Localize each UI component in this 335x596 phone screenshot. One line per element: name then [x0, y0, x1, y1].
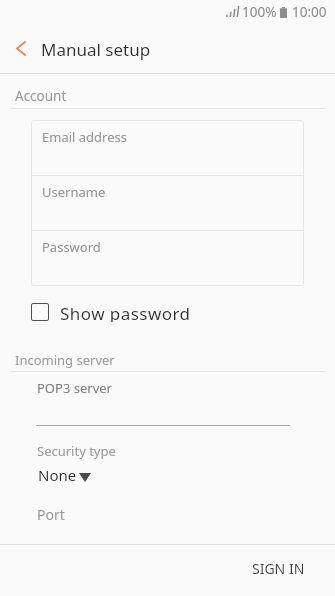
staticText: Security type [37, 442, 116, 460]
button[interactable]: SIGN IN [241, 545, 316, 589]
staticText: Email address [42, 128, 127, 146]
staticText: 100% [242, 3, 277, 21]
staticText: SIGN IN [252, 559, 305, 578]
staticText: POP3 server [37, 379, 112, 397]
button[interactable]: Email address [31, 120, 304, 175]
button[interactable]: Back [0, 28, 40, 68]
staticText: 10:00 [292, 3, 327, 21]
staticText: Username [42, 183, 106, 201]
button[interactable]: POP3 server [0, 377, 335, 427]
button[interactable]: Password [31, 230, 304, 285]
staticText: None [38, 465, 77, 483]
button[interactable]: None [38, 465, 91, 483]
staticText: Incoming server [15, 351, 115, 369]
staticText: Manual setup [41, 38, 151, 61]
staticText: Password [42, 238, 101, 256]
button[interactable]: Port [31, 496, 304, 536]
staticText: Account [15, 87, 67, 105]
button[interactable]: Show password [31, 302, 191, 322]
staticText: Show password [60, 302, 191, 322]
button[interactable]: Username [31, 175, 304, 230]
staticText: Port [37, 505, 65, 524]
